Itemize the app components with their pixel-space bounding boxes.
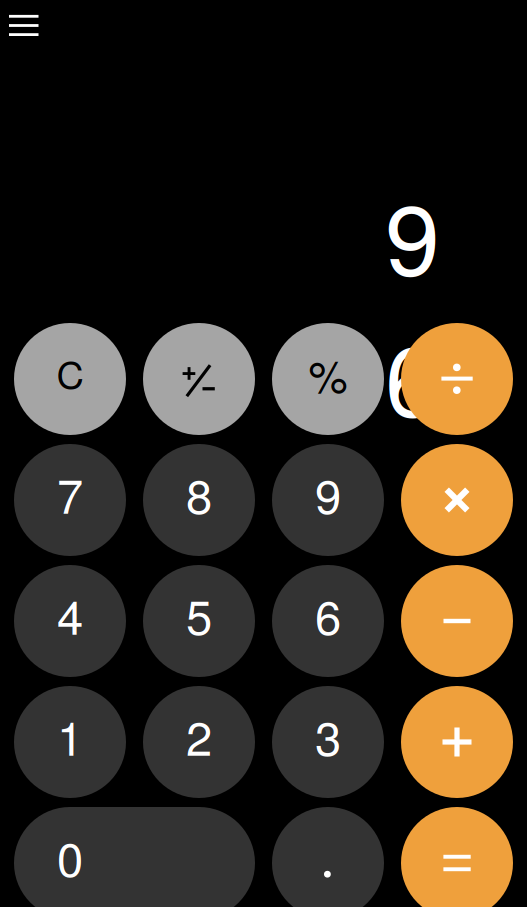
button[interactable]: 8 xyxy=(143,444,255,556)
button[interactable]: Menu xyxy=(0,0,50,52)
button[interactable]: 2 xyxy=(143,686,255,798)
button[interactable]: 5 xyxy=(143,565,255,677)
button[interactable]: Minus xyxy=(401,565,513,677)
staticText: C xyxy=(56,346,83,400)
button[interactable]: 0 xyxy=(14,807,255,907)
staticText: 6 xyxy=(315,580,341,648)
staticText: 96 xyxy=(385,163,440,446)
staticText: 3 xyxy=(315,701,341,769)
button[interactable]: 1 xyxy=(14,686,126,798)
button[interactable]: Equals xyxy=(401,807,513,907)
staticText: 7 xyxy=(57,459,83,527)
button[interactable]: C xyxy=(14,323,126,435)
button[interactable]: Decimal point xyxy=(272,807,384,907)
button[interactable]: 9 xyxy=(272,444,384,556)
staticText: 2 xyxy=(186,701,212,769)
staticText: 0 xyxy=(57,822,83,890)
staticText: 1 xyxy=(57,701,83,769)
button[interactable]: % xyxy=(272,323,384,435)
button[interactable]: Plus or minus xyxy=(143,323,255,435)
button[interactable]: Multiply xyxy=(401,444,513,556)
button[interactable]: 7 xyxy=(14,444,126,556)
staticText: 5 xyxy=(186,580,212,648)
staticText: % xyxy=(308,342,347,405)
staticText: 4 xyxy=(57,580,83,648)
staticText: 9 xyxy=(315,459,341,527)
button[interactable]: 6 xyxy=(272,565,384,677)
button[interactable]: 3 xyxy=(272,686,384,798)
staticText: 8 xyxy=(186,459,212,527)
button[interactable]: Divide xyxy=(401,323,513,435)
button[interactable]: Plus xyxy=(401,686,513,798)
button[interactable]: 4 xyxy=(14,565,126,677)
